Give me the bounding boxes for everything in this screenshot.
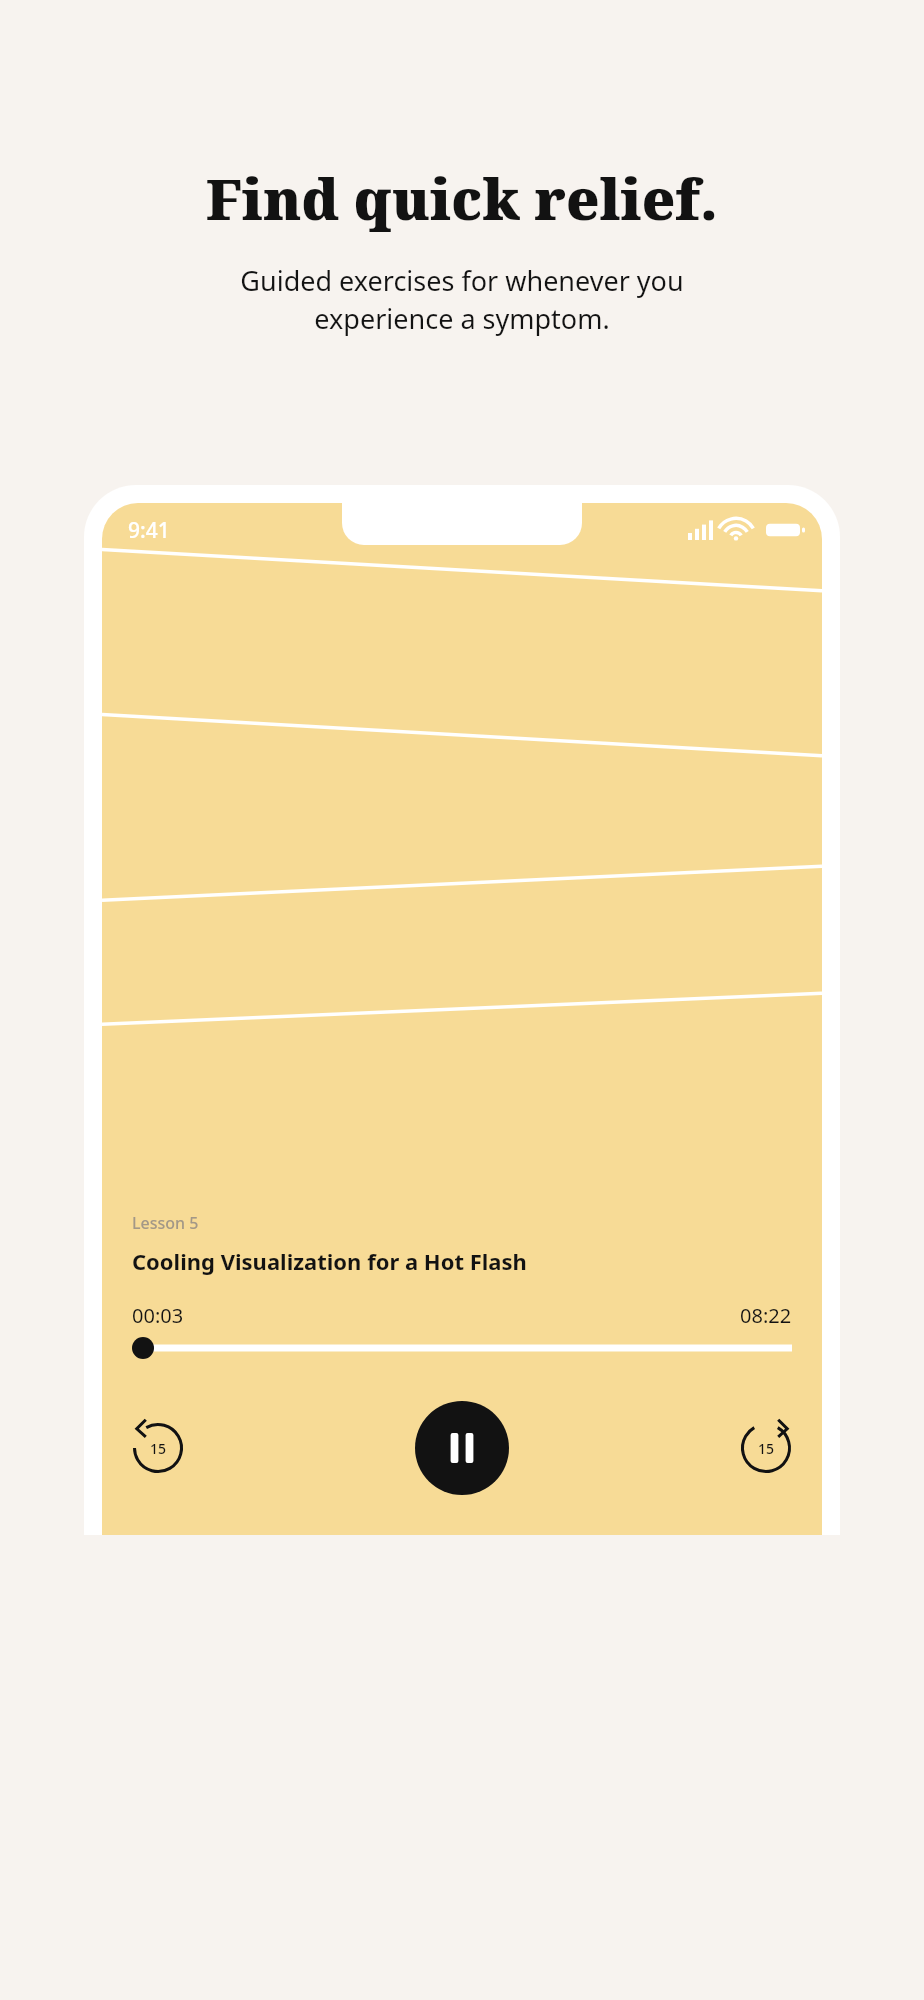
staticText: Guided exercises for whenever you experi… bbox=[240, 262, 684, 337]
button[interactable]: Back 15 seconds bbox=[132, 1422, 184, 1474]
staticText: 15 bbox=[150, 1439, 167, 1458]
button[interactable]: Pause bbox=[415, 1401, 509, 1495]
staticText: Find quick relief. bbox=[206, 160, 718, 236]
button[interactable] bbox=[132, 1337, 792, 1359]
button[interactable]: Forward 15 seconds bbox=[740, 1422, 792, 1474]
staticText: 15 bbox=[758, 1439, 775, 1458]
staticText: Lesson 5 bbox=[132, 1212, 199, 1234]
staticText: 08:22 bbox=[740, 1302, 792, 1329]
staticText: Cooling Visualization for a Hot Flash bbox=[132, 1246, 527, 1276]
staticText: 00:03 bbox=[132, 1302, 184, 1329]
staticText: 9:41 bbox=[128, 516, 170, 545]
